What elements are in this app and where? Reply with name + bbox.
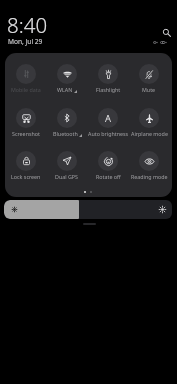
button[interactable]: Search [157, 23, 175, 41]
button[interactable] [47, 107, 87, 140]
button[interactable] [129, 150, 169, 183]
staticText: Bluetooth [53, 130, 78, 137]
staticText: Mon, Jul 29 [8, 37, 43, 46]
staticText: Rotate off [96, 173, 121, 180]
staticText: 8:40 [7, 11, 48, 39]
button[interactable]: Brightness [4, 200, 172, 219]
staticText: WLAN [57, 86, 73, 93]
button[interactable] [88, 63, 128, 96]
button[interactable] [47, 150, 87, 183]
staticText: Reading mode [131, 173, 168, 180]
button[interactable] [88, 150, 128, 183]
staticText: Dual GPS [55, 173, 79, 180]
staticText: Mobile data [11, 86, 41, 93]
staticText: Flashlight [96, 86, 121, 93]
staticText: Lock screen [11, 173, 41, 180]
button[interactable] [129, 107, 169, 140]
button[interactable] [47, 63, 87, 96]
button[interactable] [6, 63, 46, 96]
staticText: Auto brightness [88, 130, 129, 137]
button[interactable] [129, 63, 169, 96]
staticText: Screenshot [12, 130, 40, 137]
staticText: Mute [142, 86, 156, 93]
staticText: Airplane mode [131, 130, 168, 137]
button[interactable] [88, 107, 128, 140]
button[interactable] [6, 150, 46, 183]
button[interactable] [6, 107, 46, 140]
